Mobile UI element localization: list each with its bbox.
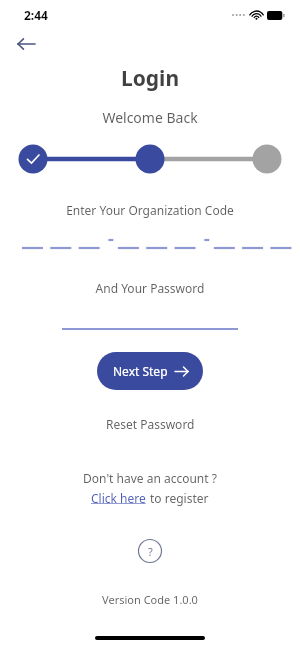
button[interactable]: Click here: [91, 490, 146, 506]
staticText: Next Step: [113, 363, 168, 379]
button[interactable]: Help: [137, 538, 163, 564]
staticText: Version Code 1.0.0: [0, 592, 300, 607]
button[interactable]: [0, 233, 300, 251]
staticText: Login: [0, 64, 300, 93]
button[interactable]: Reset Password: [106, 416, 195, 432]
staticText: ?: [148, 544, 153, 559]
staticText: to register: [150, 490, 209, 506]
button[interactable]: [62, 314, 238, 330]
staticText: Welcome Back: [0, 108, 300, 127]
staticText: Enter Your Organization Code: [0, 202, 300, 218]
staticText: Don't have an account ?: [0, 470, 300, 486]
button[interactable]: Back: [12, 30, 40, 58]
staticText: 2:44: [24, 7, 48, 23]
button[interactable]: Next Step: [97, 352, 203, 390]
staticText: And Your Password: [0, 280, 300, 296]
